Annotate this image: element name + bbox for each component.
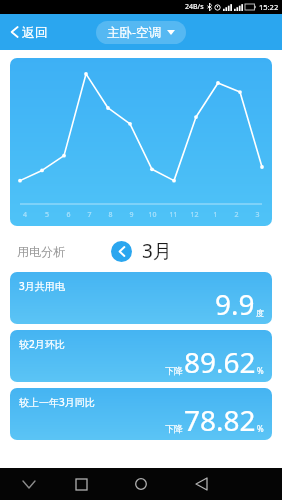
button[interactable]: 主屏幕 xyxy=(122,468,160,500)
staticText: 较上一年3月同比 xyxy=(19,395,95,409)
staticText: 下降 xyxy=(165,423,183,434)
button[interactable]: 上一月 xyxy=(111,241,132,262)
staticText: 度 xyxy=(256,308,264,318)
button[interactable]: 4 xyxy=(10,58,272,226)
staticText: 11 xyxy=(163,210,184,220)
staticText: 9.9 xyxy=(215,285,255,323)
staticText: 78.82 xyxy=(184,401,256,439)
staticText: 15:22 xyxy=(259,2,279,12)
button[interactable]: 隐藏导航栏 xyxy=(16,471,42,497)
staticText: % xyxy=(257,423,264,434)
staticText: 24B/s xyxy=(185,2,204,12)
button[interactable]: 较上一年3月同比 xyxy=(10,388,272,440)
staticText: 2 xyxy=(226,210,247,220)
staticText: 3月共用电 xyxy=(19,279,65,293)
staticText: 下降 xyxy=(165,365,183,376)
staticText: 4 xyxy=(14,210,36,220)
staticText: 8 xyxy=(100,210,121,220)
staticText: 3 xyxy=(247,210,268,220)
staticText: 12 xyxy=(184,210,205,220)
staticText: 用电分析 xyxy=(17,244,65,259)
staticText: 6 xyxy=(58,210,79,220)
staticText: 主卧-空调 xyxy=(107,24,162,41)
button[interactable]: 返回 xyxy=(182,468,220,500)
button[interactable]: 3月共用电 xyxy=(10,272,272,324)
staticText: 返回 xyxy=(22,24,48,40)
staticText: 89.62 xyxy=(184,343,256,381)
staticText: 7 xyxy=(79,210,100,220)
staticText: % xyxy=(257,365,264,376)
staticText: 较2月环比 xyxy=(19,337,65,351)
staticText: 3月 xyxy=(142,238,172,264)
button[interactable]: 较2月环比 xyxy=(10,330,272,382)
staticText: 9 xyxy=(121,210,142,220)
button[interactable]: 最近应用 xyxy=(62,468,100,500)
button[interactable]: 返回 xyxy=(6,21,52,43)
staticText: 5 xyxy=(36,210,58,220)
button[interactable]: 主卧-空调 xyxy=(96,21,186,44)
staticText: 10 xyxy=(142,210,163,220)
staticText: 1 xyxy=(205,210,226,220)
